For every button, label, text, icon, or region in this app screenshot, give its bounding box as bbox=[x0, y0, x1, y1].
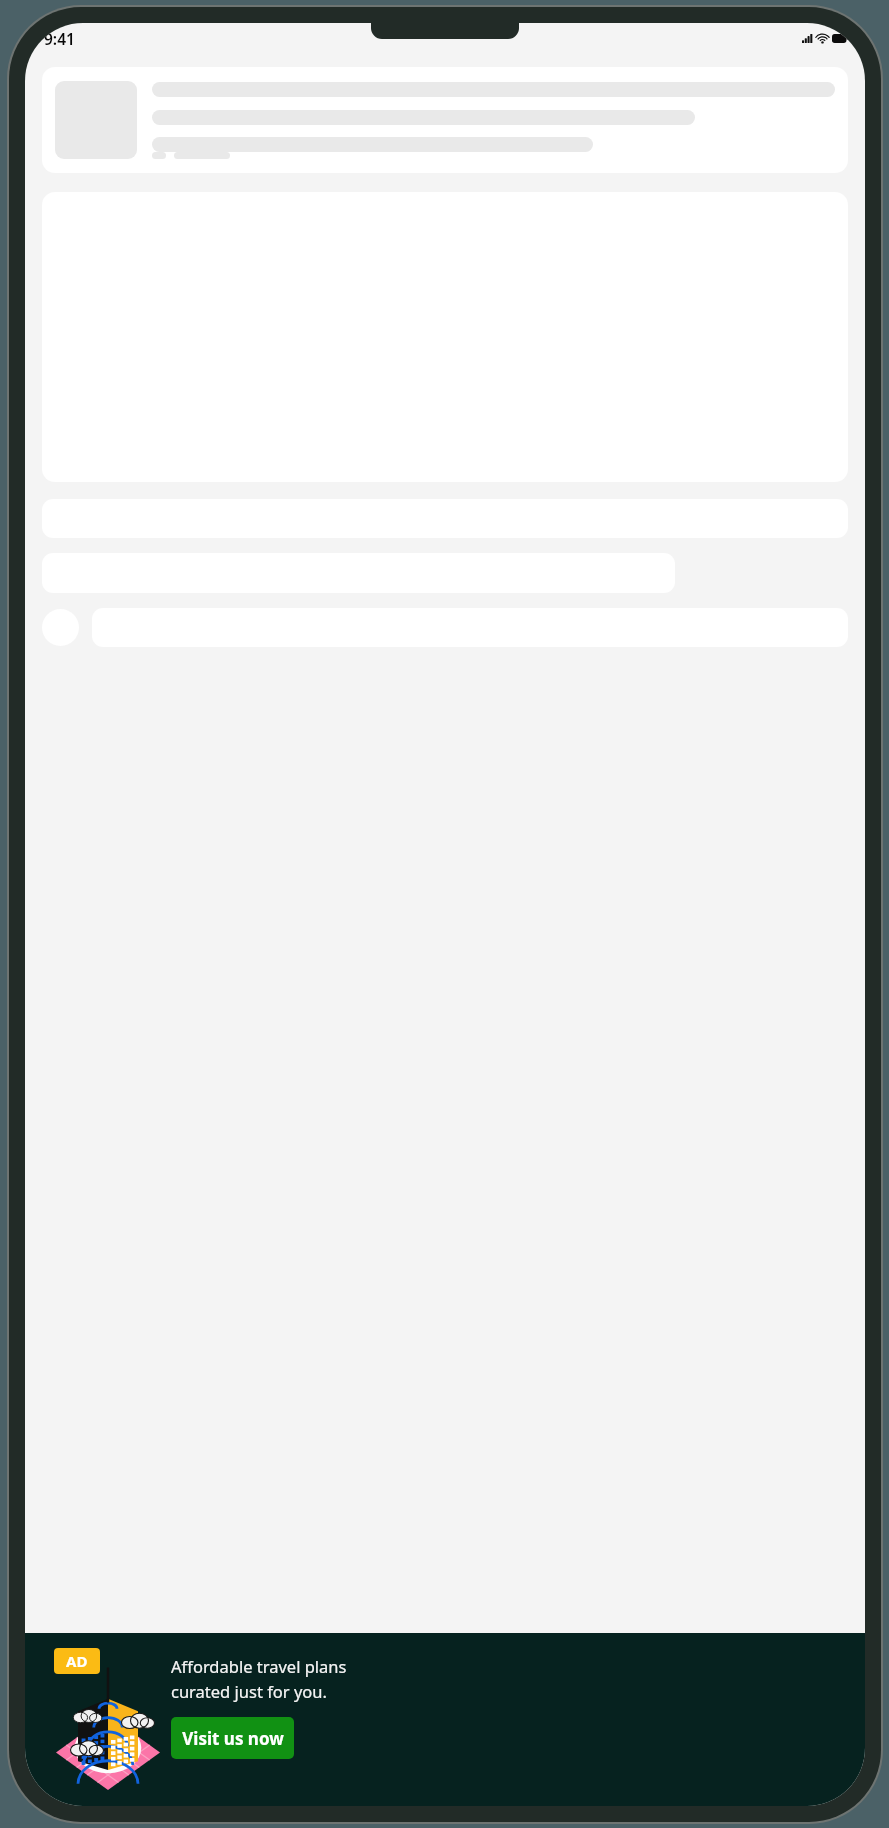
button[interactable]: AD bbox=[25, 1633, 865, 1806]
staticText: 9:41 bbox=[44, 28, 75, 49]
button[interactable]: Visit us now bbox=[171, 1717, 294, 1759]
staticText: Affordable travel plans curated just for… bbox=[171, 1655, 361, 1702]
staticText: Visit us now bbox=[182, 1727, 284, 1750]
button[interactable]: AD bbox=[54, 1648, 100, 1674]
button[interactable] bbox=[42, 67, 848, 173]
staticText: AD bbox=[66, 1651, 88, 1671]
button[interactable] bbox=[42, 609, 79, 646]
